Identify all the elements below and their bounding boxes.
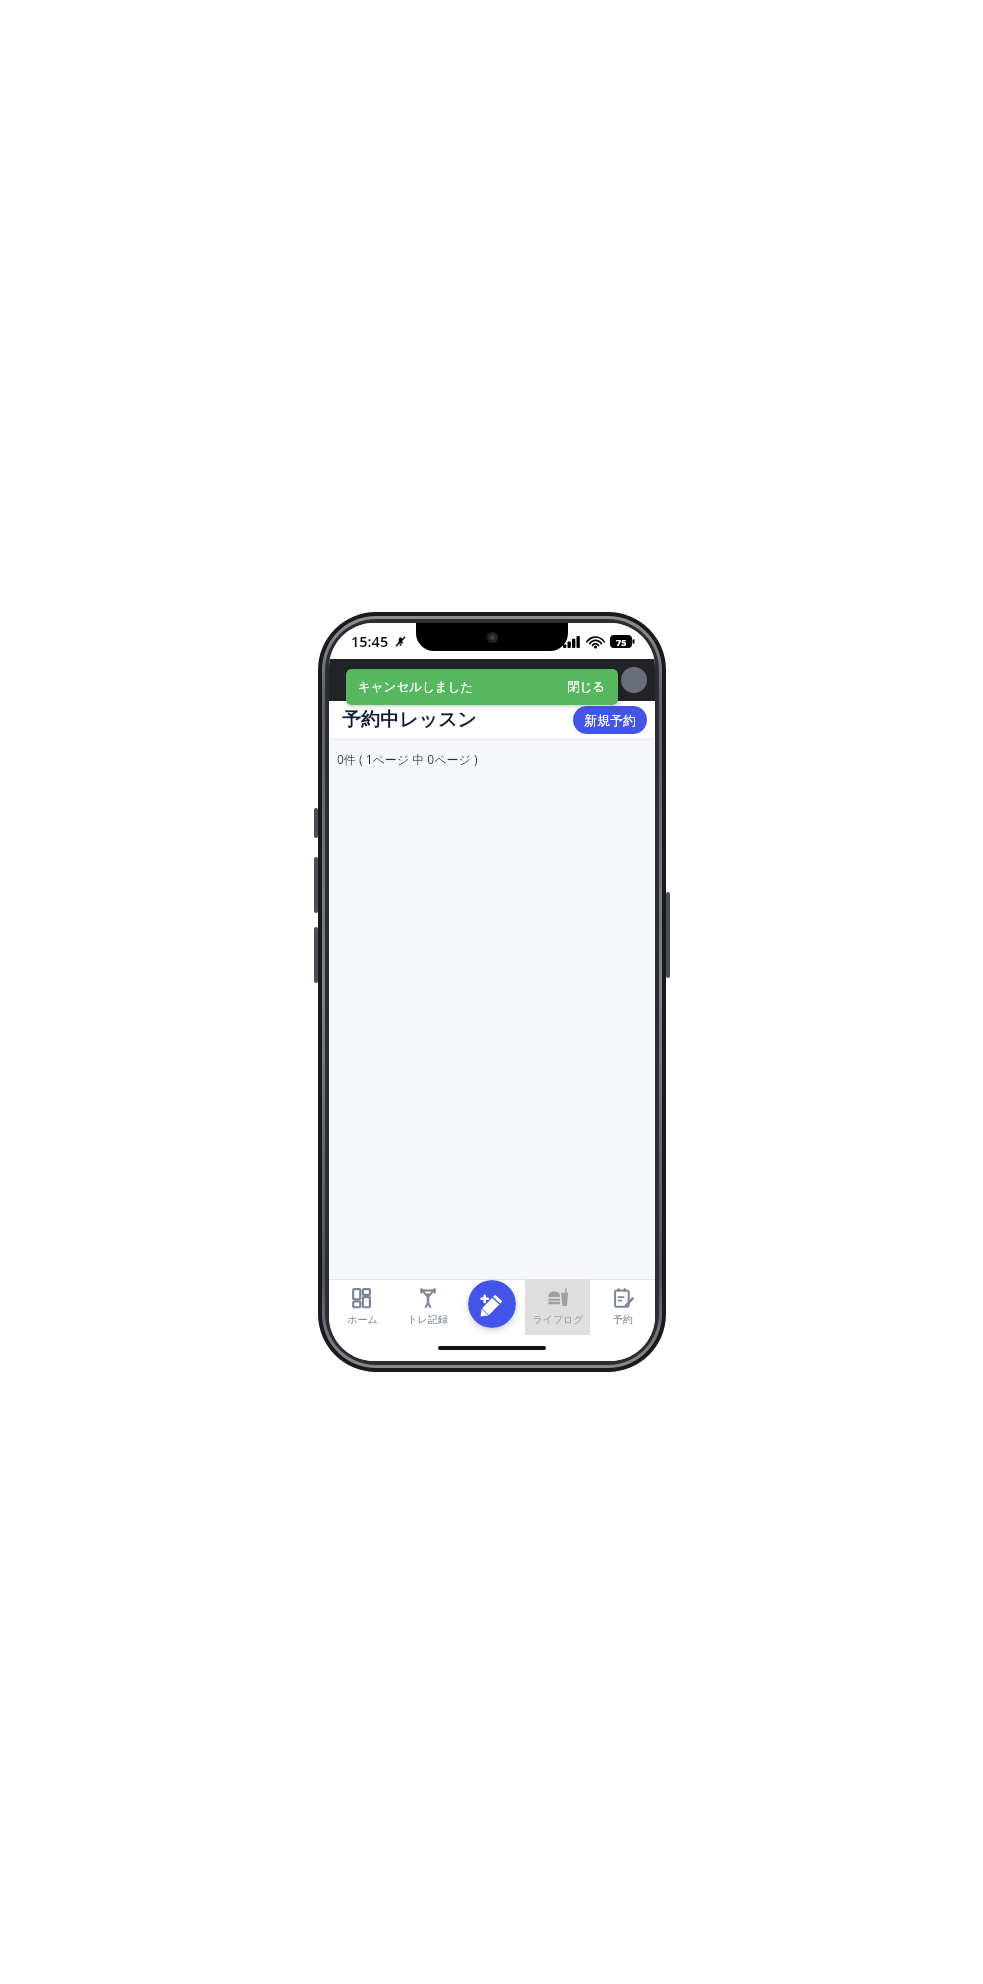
button[interactable]: ライフログ — [525, 1279, 590, 1335]
button[interactable]: 予約 — [590, 1279, 655, 1335]
staticText: 75 — [616, 636, 627, 648]
button[interactable]: Menu — [339, 663, 373, 697]
button[interactable]: キャンセルしました — [346, 669, 618, 705]
staticText: 0件 ( 1ページ 中 0ページ ) — [337, 751, 478, 767]
staticText: 予約 — [613, 1313, 633, 1326]
staticText: 15:45 — [351, 631, 389, 651]
button[interactable]: Account — [621, 667, 647, 693]
staticText: トレ記録 — [407, 1313, 448, 1326]
staticText: 予約中レッスン — [342, 708, 477, 732]
staticText: ホーム — [347, 1313, 378, 1326]
button[interactable]: トレ記録 — [395, 1279, 460, 1335]
button[interactable]: 新規予約 — [573, 706, 647, 734]
staticText: ライフログ — [532, 1313, 584, 1326]
button[interactable]: ホーム — [329, 1279, 395, 1335]
staticText: キャンセルしました — [358, 679, 474, 695]
button[interactable]: 閉じる — [567, 679, 606, 695]
staticText: 新規予約 — [584, 712, 636, 728]
button[interactable]: Add record — [468, 1280, 516, 1328]
